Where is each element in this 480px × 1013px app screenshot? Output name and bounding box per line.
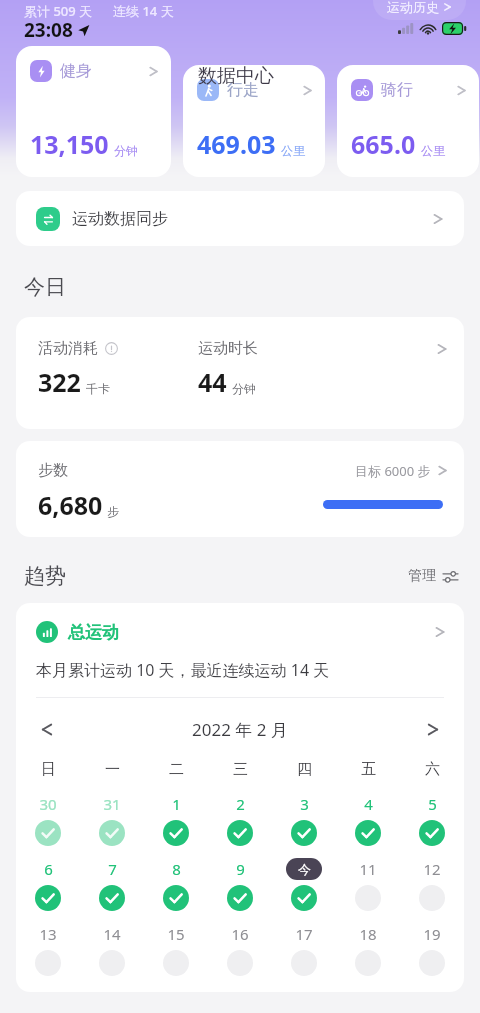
button[interactable]: 运动数据同步 [16,191,464,246]
button[interactable]: 1 [152,793,200,846]
staticText: 13,150 [30,127,109,161]
button[interactable]: 行走 [183,65,325,177]
button[interactable]: Next month [416,712,450,746]
staticText: 管理 [408,567,436,585]
button[interactable]: 活动消耗 [16,317,464,429]
staticText: 活动消耗 [38,339,98,358]
staticText: 数据中心 [198,64,274,88]
staticText: 16 [231,924,249,944]
button[interactable]: 管理 [404,563,462,589]
button[interactable]: 健身 [16,46,171,177]
button[interactable]: 30 [24,793,72,846]
staticText: 30 [39,794,57,814]
staticText: 行走 [227,80,259,100]
button[interactable]: 3 [280,793,328,846]
button[interactable]: 19 [408,923,456,976]
button[interactable]: 17 [280,923,328,976]
staticText: 12 [423,859,441,879]
staticText: 8 [172,859,181,879]
staticText: 六 [425,760,440,779]
button[interactable]: 今 [280,858,328,911]
button[interactable]: 12 [408,858,456,911]
staticText: 今 [298,861,311,877]
button[interactable]: 13 [24,923,72,976]
staticText: 总运动 [68,622,119,643]
staticText: 连续 14 天 [113,2,174,20]
button[interactable]: 11 [344,858,392,911]
staticText: 17 [295,924,313,944]
staticText: 一 [105,760,120,779]
staticText: 日 [41,760,56,779]
staticText: 2 [236,794,245,814]
staticText: 665.0 [351,127,416,161]
staticText: 分钟 [232,381,256,396]
button[interactable]: Back [14,78,44,108]
staticText: 322 [38,365,81,399]
button[interactable]: 4 [344,793,392,846]
staticText: 本月累计运动 10 天，最近连续运动 14 天 [36,659,330,681]
staticText: 公里 [281,143,305,158]
staticText: 运动历史 [387,0,439,15]
staticText: 6 [44,859,53,879]
button[interactable]: 7 [88,858,136,911]
button[interactable]: 8 [152,858,200,911]
button[interactable]: 骑行 [337,65,479,177]
staticText: 运动数据同步 [72,209,168,229]
staticText: 3 [300,794,309,814]
button[interactable]: 6 [24,858,72,911]
staticText: 千卡 [86,381,110,396]
staticText: 公里 [421,143,445,158]
staticText: 11 [359,859,377,879]
button[interactable]: 31 [88,793,136,846]
staticText: 步 [107,504,119,519]
staticText: 23:08 [24,17,73,43]
staticText: 7 [108,859,117,879]
staticText: 19 [423,924,441,944]
button[interactable]: 总运动 [16,603,464,651]
staticText: 469.03 [197,127,276,161]
staticText: 44 [198,365,227,399]
staticText: 13 [39,924,57,944]
staticText: 目标 6000 步 [355,462,431,480]
staticText: 五 [361,760,376,779]
staticText: 分钟 [114,143,138,158]
button[interactable]: 15 [152,923,200,976]
staticText: 5 [428,794,437,814]
staticText: 四 [297,760,312,779]
staticText: 15 [167,924,185,944]
staticText: 累计 509 天 [24,2,93,20]
staticText: 9 [236,859,245,879]
button[interactable]: 5 [408,793,456,846]
staticText: 14 [103,924,121,944]
staticText: 步数 [38,461,68,480]
staticText: 2022 年 2 月 [192,718,288,741]
staticText: 18 [359,924,377,944]
staticText: 6,680 [38,488,103,522]
staticText: 二 [169,760,184,779]
button[interactable]: 18 [344,923,392,976]
button[interactable]: 2 [216,793,264,846]
button[interactable]: Previous month [30,712,64,746]
staticText: 健身 [60,61,92,81]
staticText: 三 [233,760,248,779]
staticText: 骑行 [381,80,413,100]
staticText: 1 [172,794,181,814]
button[interactable]: 14 [88,923,136,976]
staticText: 今日 [24,274,66,300]
staticText: 运动时长 [198,339,258,358]
staticText: 4 [364,794,373,814]
staticText: 31 [103,794,121,814]
button[interactable]: 步数 [16,441,464,537]
button[interactable]: 9 [216,858,264,911]
staticText: 趋势 [24,563,66,589]
button[interactable]: 16 [216,923,264,976]
button[interactable]: 运动历史 [373,0,466,20]
